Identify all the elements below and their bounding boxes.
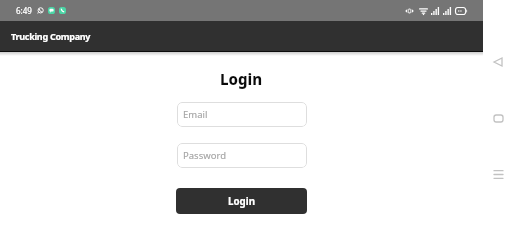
staticText: Email [183,108,208,121]
staticText: Password [183,149,226,162]
button[interactable]: Home [487,107,509,129]
staticText: Trucking Company [11,30,91,42]
button[interactable]: Back [487,51,509,73]
staticText: Login [228,195,256,208]
staticText: 6:49 [16,5,32,16]
button[interactable]: Password [177,143,307,168]
staticText: Login [220,69,263,89]
button[interactable]: Login [176,188,307,214]
button[interactable]: Recent apps [487,163,509,185]
button[interactable]: Email [177,102,307,127]
